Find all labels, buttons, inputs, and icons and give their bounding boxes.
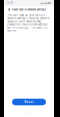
staticText: This will reset all your mobile network …: [7, 14, 49, 32]
staticText: 9:41: [7, 1, 13, 5]
button[interactable]: Reset: [12, 99, 46, 105]
staticText: Reset mobile network settings: [12, 8, 46, 11]
staticText: Reset: [24, 100, 33, 104]
button[interactable]: Back: [7, 7, 12, 12]
